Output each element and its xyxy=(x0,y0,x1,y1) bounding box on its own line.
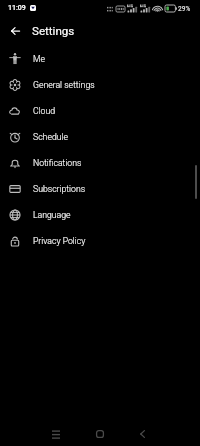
staticText: Notifications xyxy=(33,158,82,168)
staticText: General settings xyxy=(33,80,95,90)
button[interactable]: Back xyxy=(4,20,26,42)
staticText: Schedule xyxy=(33,132,68,142)
staticText: Language xyxy=(33,210,71,220)
button[interactable]: Schedule xyxy=(0,124,200,150)
button[interactable]: Cloud xyxy=(0,98,200,124)
staticText: 11:09 xyxy=(8,4,26,12)
button[interactable]: Notifications xyxy=(0,150,200,176)
button[interactable]: Back xyxy=(131,423,153,445)
staticText: 29% xyxy=(178,5,191,13)
button[interactable]: General settings xyxy=(0,72,200,98)
button[interactable]: Language xyxy=(0,202,200,228)
staticText: Privacy Policy xyxy=(33,236,86,246)
staticText: Settings xyxy=(32,24,75,38)
button[interactable]: Subscriptions xyxy=(0,176,200,202)
button[interactable]: Me xyxy=(0,46,200,72)
button[interactable]: Privacy Policy xyxy=(0,228,200,254)
staticText: Cloud xyxy=(33,106,56,116)
button[interactable]: Home xyxy=(89,423,111,445)
staticText: Me xyxy=(33,54,46,64)
staticText: Subscriptions xyxy=(33,184,86,194)
button[interactable]: Recent apps xyxy=(45,423,67,445)
